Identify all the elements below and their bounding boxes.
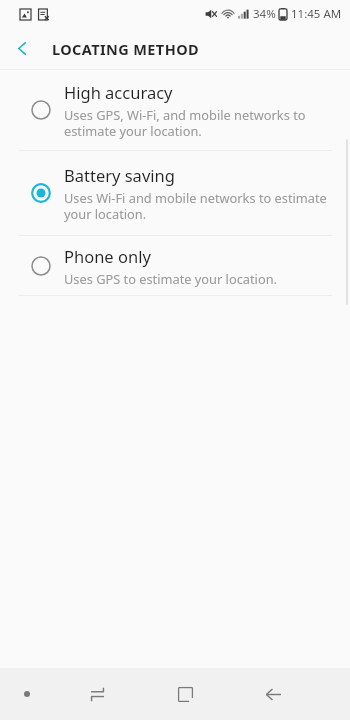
staticText: Uses GPS, Wi-Fi, and mobile networks to … [64, 106, 306, 140]
staticText: Uses Wi-Fi and mobile networks to estima… [64, 189, 327, 223]
button[interactable]: Hide navigation bar [0, 668, 53, 720]
button[interactable]: Back [229, 668, 317, 720]
staticText: High accuracy [64, 81, 173, 103]
button[interactable]: Home [141, 668, 229, 720]
staticText: 11:45 AM [291, 6, 342, 22]
staticText: Uses GPS to estimate your location. [64, 270, 277, 287]
button[interactable]: Battery saving [0, 151, 350, 235]
staticText: LOCATING METHOD [52, 39, 200, 59]
staticText: 34% [253, 6, 276, 22]
button[interactable]: Recent apps [53, 668, 141, 720]
button[interactable]: High accuracy [0, 70, 350, 150]
button[interactable]: Phone only [0, 236, 350, 295]
staticText: Battery saving [64, 164, 175, 186]
staticText: Phone only [64, 245, 151, 267]
button[interactable]: Back [0, 28, 44, 69]
